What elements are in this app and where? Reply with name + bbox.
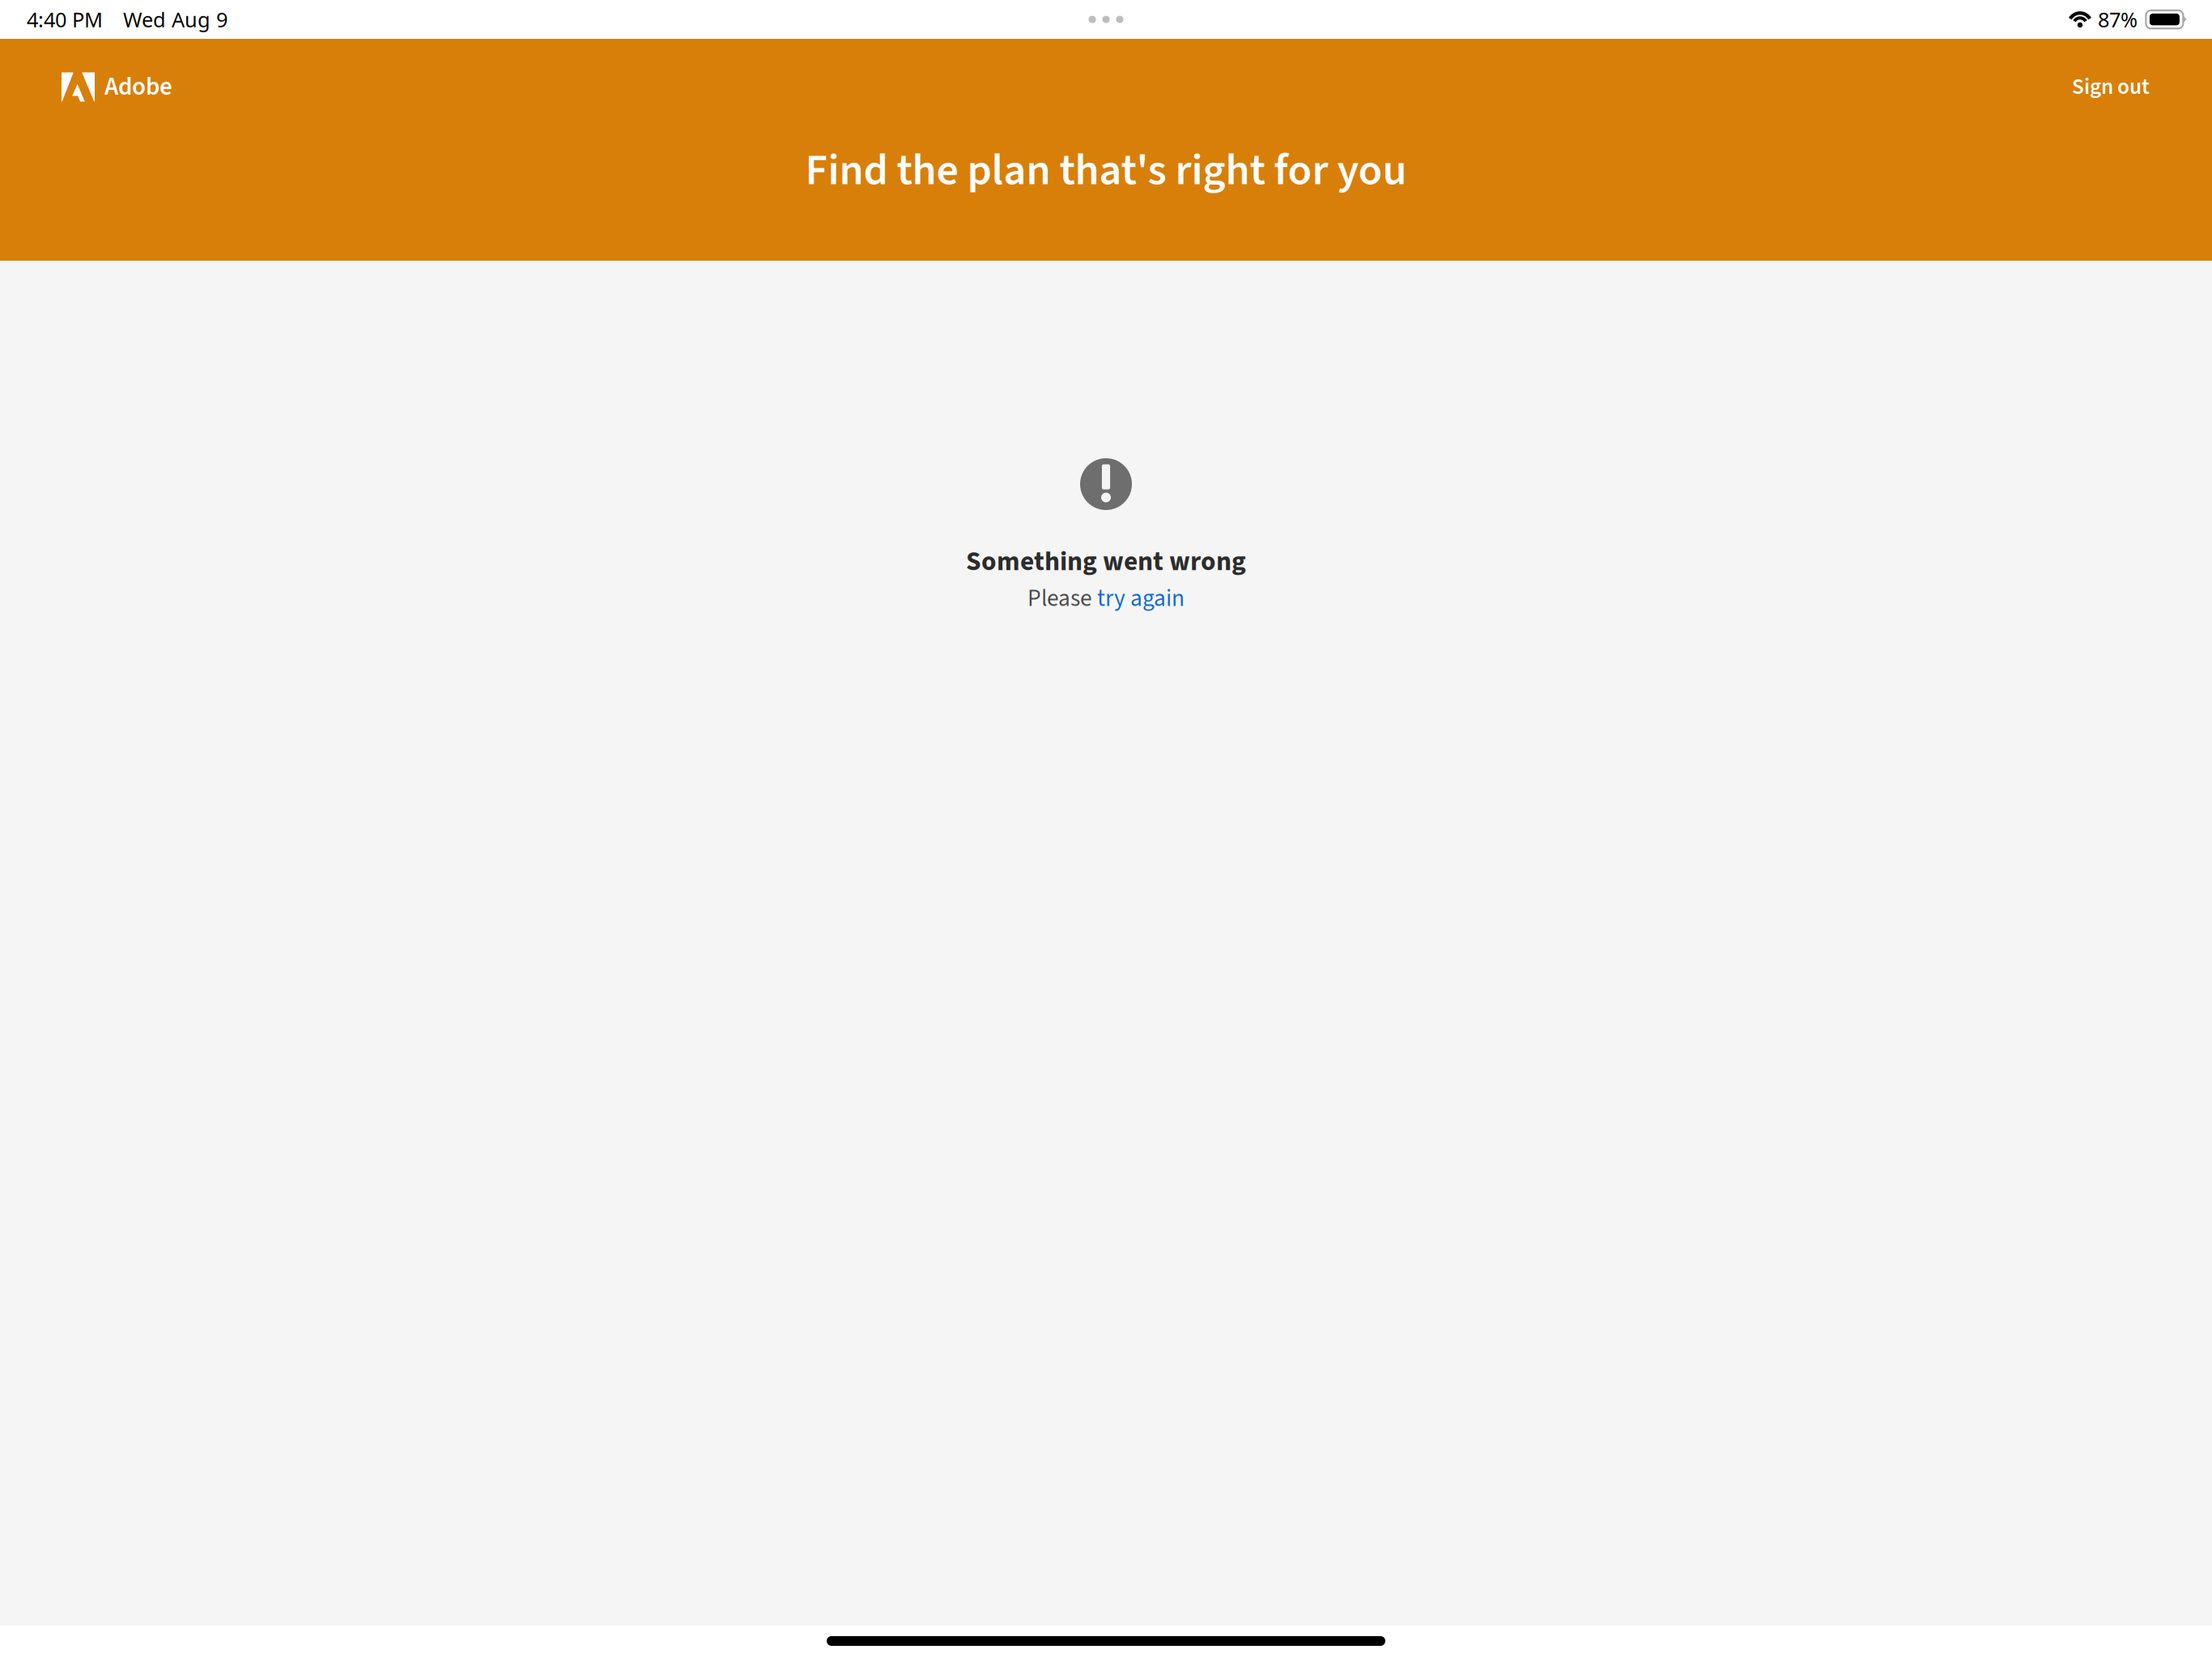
staticText: Adobe <box>104 69 172 105</box>
staticText: 4:40 PM <box>27 6 103 33</box>
staticText: 87% <box>2098 6 2138 33</box>
staticText: Wed Aug 9 <box>123 6 228 33</box>
staticText: Please <box>1027 582 1097 616</box>
button[interactable]: Try again <box>1097 582 1185 616</box>
staticText: Sign out <box>2072 71 2150 103</box>
staticText: Something went wrong <box>966 542 1246 581</box>
button[interactable]: Adobe <box>58 61 176 113</box>
staticText: try again <box>1097 582 1185 616</box>
staticText: Find the plan that's right for you <box>805 139 1407 202</box>
button[interactable]: Sign out <box>2065 60 2156 114</box>
